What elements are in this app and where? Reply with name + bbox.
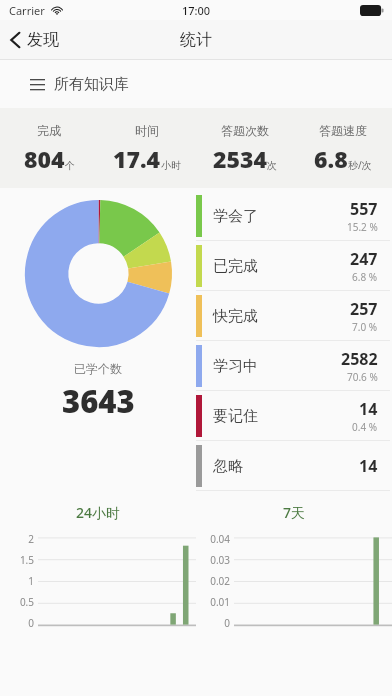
button[interactable]: 发现: [0, 26, 69, 54]
staticText: 2534: [213, 143, 267, 174]
staticText: 2: [28, 532, 34, 546]
staticText: 要记住: [213, 407, 258, 426]
staticText: 秒/次: [348, 158, 372, 172]
staticText: 时间: [135, 123, 159, 138]
staticText: 学习中: [213, 357, 258, 376]
staticText: 学会了: [213, 207, 258, 226]
button[interactable]: 学会了: [196, 191, 390, 241]
staticText: 已完成: [213, 257, 258, 276]
staticText: 14: [359, 455, 378, 477]
button[interactable]: 所有知识库: [0, 69, 149, 100]
button[interactable]: 忽略: [196, 441, 390, 491]
staticText: 3643: [62, 380, 135, 422]
staticText: 次: [267, 159, 277, 172]
button[interactable]: 已完成: [196, 241, 390, 291]
staticText: 发现: [27, 30, 59, 50]
staticText: 15.2 %: [347, 220, 378, 234]
staticText: Carrier: [9, 3, 45, 18]
staticText: 忽略: [213, 457, 243, 476]
button[interactable]: 快完成: [196, 291, 390, 341]
staticText: 0: [28, 616, 34, 630]
staticText: 0.03: [210, 553, 230, 567]
staticText: 个: [65, 159, 75, 172]
staticText: 0.04: [210, 532, 230, 546]
staticText: 257: [350, 298, 378, 320]
staticText: 0.01: [210, 595, 230, 609]
staticText: 7天: [283, 503, 306, 522]
staticText: 557: [350, 198, 378, 220]
staticText: 17.4: [113, 143, 161, 174]
staticText: 所有知识库: [54, 75, 129, 94]
staticText: 6.8: [314, 143, 348, 174]
staticText: 0.4 %: [352, 420, 378, 434]
button[interactable]: 要记住: [196, 391, 390, 441]
staticText: 70.6 %: [347, 370, 378, 384]
staticText: 0: [224, 616, 230, 630]
staticText: 6.8 %: [352, 270, 378, 284]
staticText: 1: [28, 574, 34, 588]
staticText: 24小时: [76, 503, 121, 522]
staticText: 完成: [37, 123, 61, 138]
staticText: 17:00: [182, 3, 211, 18]
staticText: 2582: [341, 348, 378, 370]
staticText: 统计: [180, 30, 212, 50]
staticText: 0.5: [19, 595, 34, 609]
staticText: 1.5: [19, 553, 34, 567]
staticText: 已学个数: [74, 361, 122, 376]
staticText: 小时: [161, 159, 181, 172]
staticText: 7.0 %: [352, 320, 378, 334]
staticText: 804: [24, 143, 65, 174]
staticText: 247: [350, 248, 378, 270]
staticText: 14: [359, 398, 378, 420]
staticText: 0.02: [210, 574, 230, 588]
staticText: 快完成: [213, 307, 258, 326]
button[interactable]: 学习中: [196, 341, 390, 391]
staticText: 答题速度: [319, 123, 367, 138]
staticText: 答题次数: [221, 123, 269, 138]
